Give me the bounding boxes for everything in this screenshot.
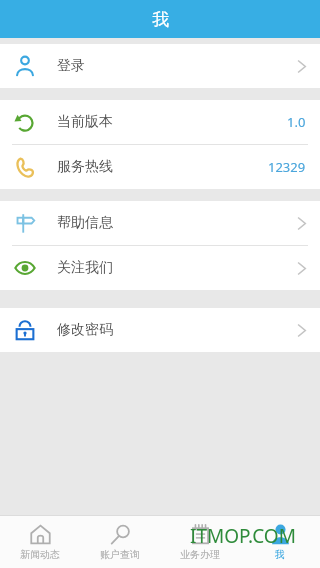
- button[interactable]: Help: [0, 201, 320, 245]
- button[interactable]: 我: [240, 516, 320, 568]
- button[interactable]: Follow us: [0, 246, 320, 290]
- other: Change password: [13, 318, 37, 342]
- button[interactable]: 账户查询: [80, 516, 160, 568]
- other: Help: [13, 211, 37, 235]
- staticText: 账户查询: [100, 548, 140, 561]
- staticText: 修改密码: [57, 321, 113, 339]
- button[interactable]: Hotline: [0, 145, 320, 189]
- button[interactable]: 业务办理: [160, 516, 240, 568]
- staticText: 关注我们: [57, 259, 113, 277]
- other: Account: [13, 54, 37, 78]
- other: Hotline: [13, 155, 37, 179]
- button[interactable]: 新闻动态: [0, 516, 80, 568]
- staticText: 1.0: [287, 113, 306, 131]
- staticText: 我: [275, 548, 285, 561]
- other: Version: [13, 110, 37, 134]
- staticText: 12329: [268, 158, 306, 176]
- staticText: ITMOP.COM: [190, 523, 296, 549]
- staticText: 帮助信息: [57, 214, 113, 232]
- button[interactable]: Change password: [0, 308, 320, 352]
- staticText: 服务热线: [57, 158, 113, 176]
- staticText: 当前版本: [57, 113, 113, 131]
- staticText: 登录: [57, 57, 85, 75]
- button[interactable]: Account: [0, 44, 320, 88]
- staticText: 新闻动态: [20, 548, 60, 561]
- other: Follow us: [13, 256, 37, 280]
- staticText: 业务办理: [180, 548, 220, 561]
- button[interactable]: Version: [0, 100, 320, 144]
- staticText: 我: [152, 9, 169, 30]
